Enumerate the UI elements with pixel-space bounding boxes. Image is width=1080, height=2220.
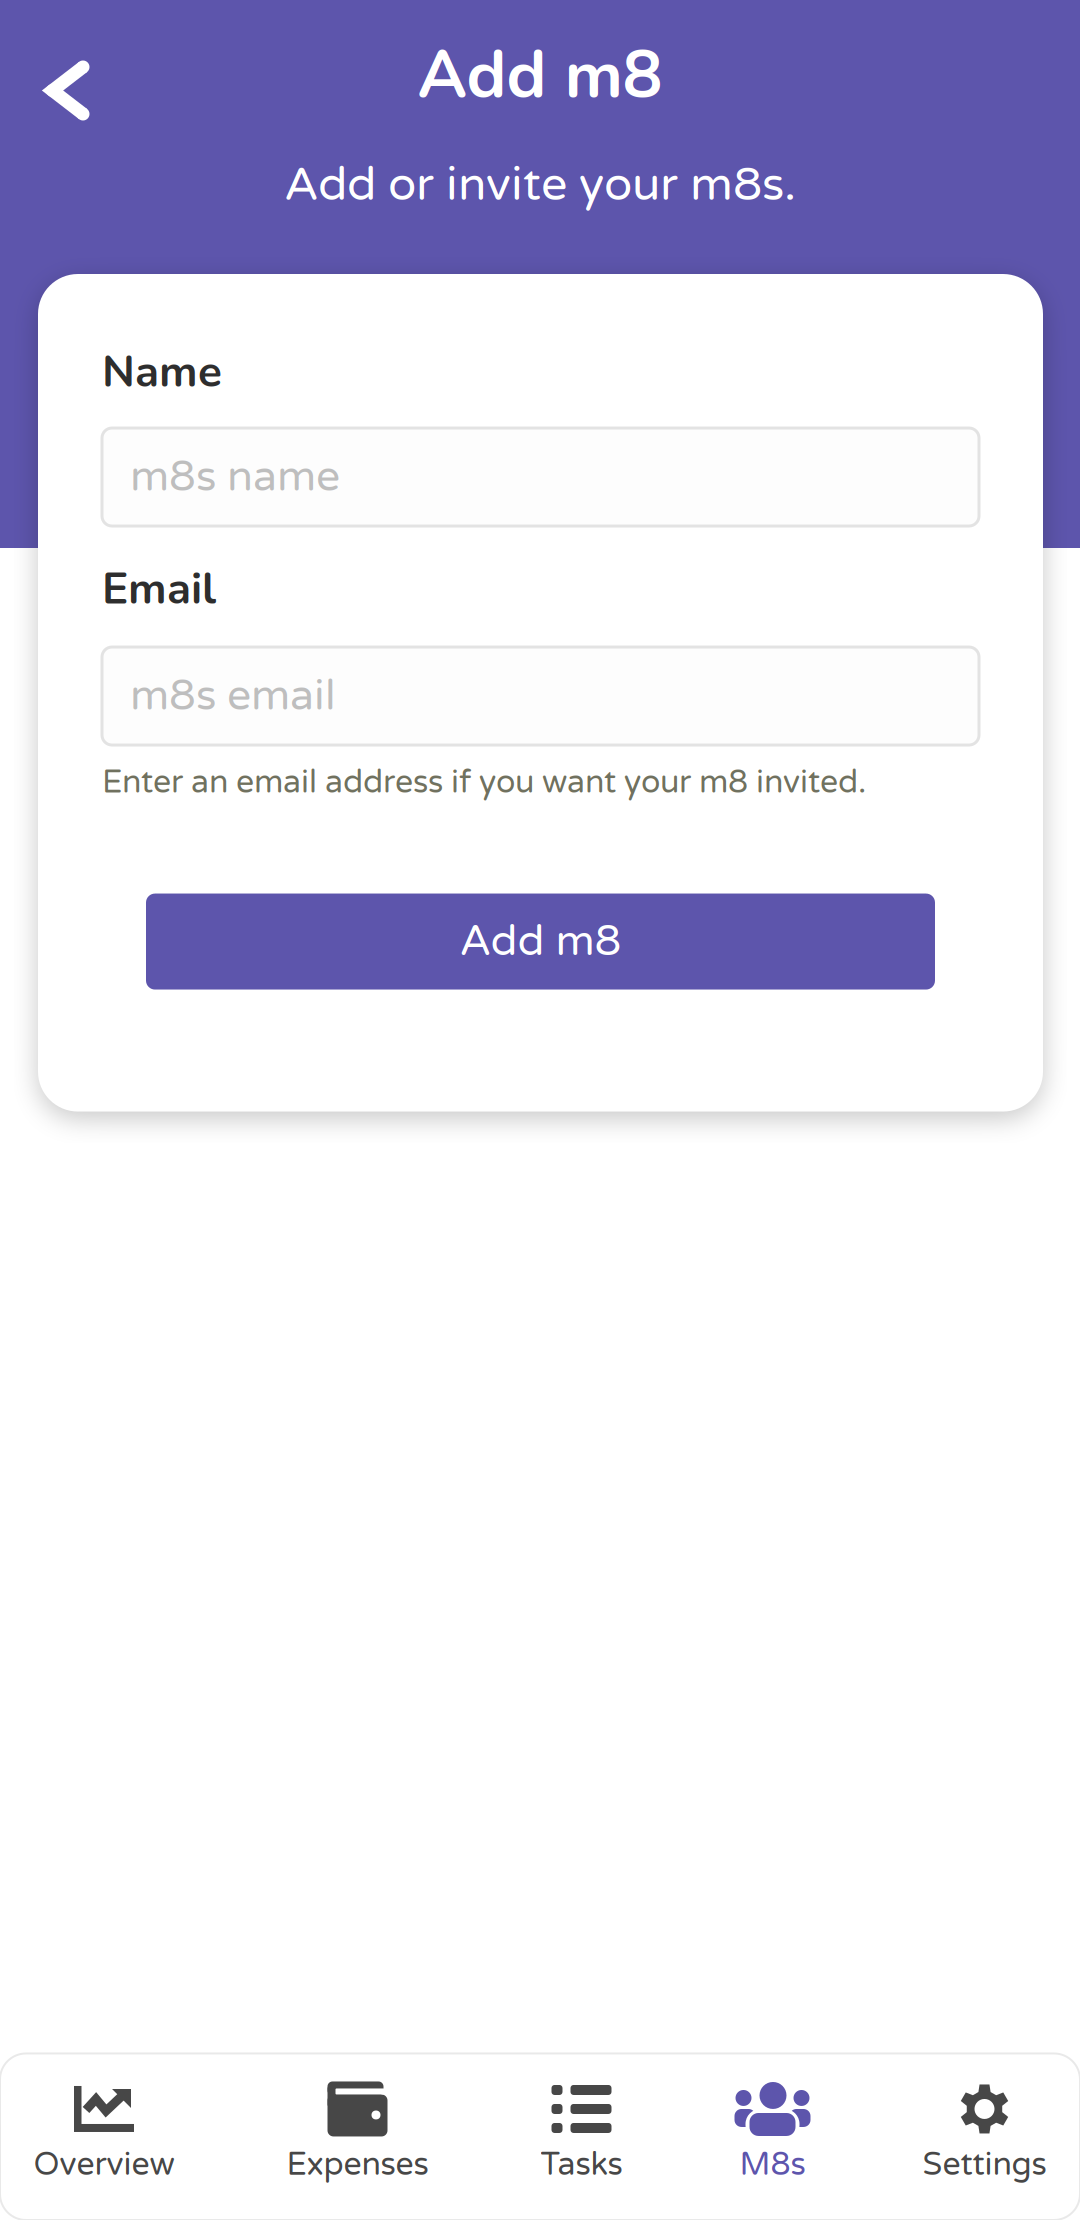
staticText: Expenses bbox=[286, 2145, 428, 2184]
button[interactable]: Tasks bbox=[540, 2053, 622, 2220]
staticText: Add m8 bbox=[459, 916, 621, 967]
staticText: Tasks bbox=[540, 2145, 622, 2184]
button[interactable]: Overview bbox=[33, 2053, 174, 2220]
button[interactable]: M8s bbox=[734, 2053, 810, 2220]
button[interactable]: Expenses bbox=[286, 2053, 428, 2220]
staticText: Enter an email address if you want your … bbox=[102, 763, 866, 801]
staticText: Add m8 bbox=[417, 29, 662, 120]
staticText: Settings bbox=[922, 2145, 1046, 2184]
staticText: m8s email bbox=[130, 670, 336, 722]
staticText: m8s name bbox=[130, 451, 340, 503]
staticText: M8s bbox=[739, 2145, 805, 2184]
staticText: Overview bbox=[33, 2145, 174, 2184]
staticText: Name bbox=[102, 342, 222, 402]
button[interactable]: Back bbox=[0, 29, 110, 120]
staticText: Add or invite your m8s. bbox=[284, 157, 796, 213]
staticText: Email bbox=[102, 559, 216, 619]
button[interactable]: Settings bbox=[922, 2053, 1046, 2220]
button[interactable]: Add m8 bbox=[146, 894, 935, 990]
